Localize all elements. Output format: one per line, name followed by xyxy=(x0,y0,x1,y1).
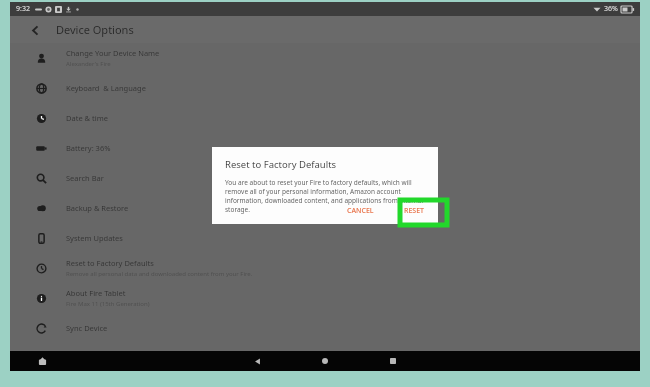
staticText: Backup & Restore xyxy=(66,203,129,213)
button[interactable]: Back xyxy=(24,19,46,41)
staticText: You are about to reset your Fire to fact… xyxy=(225,178,428,214)
staticText: About Fire Tablet xyxy=(66,288,126,298)
button[interactable]: Change Your Device Name xyxy=(10,43,640,73)
staticText: Keyboard & Language xyxy=(66,83,146,93)
button[interactable]: Search Bar xyxy=(10,163,640,193)
staticText: 36% xyxy=(604,4,618,14)
button[interactable]: CANCEL xyxy=(338,201,383,221)
button[interactable]: Keyboard & Language xyxy=(10,73,640,103)
staticText: Battery: 36% xyxy=(66,143,111,153)
button[interactable]: Home xyxy=(314,351,336,371)
staticText: Search Bar xyxy=(66,173,104,183)
staticText: Device Options xyxy=(56,22,134,37)
button[interactable]: Backup & Restore xyxy=(10,193,640,223)
button[interactable]: About Fire Tablet xyxy=(10,283,640,313)
button[interactable]: System Updates xyxy=(10,223,640,253)
button[interactable]: Battery: 36% xyxy=(10,133,640,163)
staticText: Fire Max 11 (15th Generation) xyxy=(66,300,150,308)
staticText: Sync Device xyxy=(66,323,108,333)
staticText: Alexander's Fire xyxy=(66,60,111,68)
button[interactable]: Screenshot xyxy=(34,353,50,369)
staticText: CANCEL xyxy=(347,206,374,216)
staticText: Date & time xyxy=(66,113,108,123)
staticText: RESET xyxy=(404,206,425,216)
button[interactable]: RESET xyxy=(395,201,434,221)
button[interactable]: Back xyxy=(246,351,268,371)
staticText: Reset to Factory Defaults xyxy=(225,158,337,171)
button[interactable]: Date & time xyxy=(10,103,640,133)
staticText: System Updates xyxy=(66,233,123,243)
button[interactable]: Sync Device xyxy=(10,313,640,343)
button[interactable]: Recents xyxy=(382,351,404,371)
staticText: Reset to Factory Defaults xyxy=(66,258,154,268)
staticText: 9:32 xyxy=(16,4,30,14)
staticText: Change Your Device Name xyxy=(66,48,160,58)
button[interactable]: Reset to Factory Defaults xyxy=(10,253,640,283)
staticText: Remove all personal data and downloaded … xyxy=(66,270,253,278)
